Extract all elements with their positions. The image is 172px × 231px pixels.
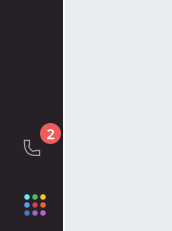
staticText: 2: [46, 124, 54, 143]
button[interactable]: Phone: [17, 119, 61, 163]
button[interactable]: Apps: [22, 192, 48, 218]
